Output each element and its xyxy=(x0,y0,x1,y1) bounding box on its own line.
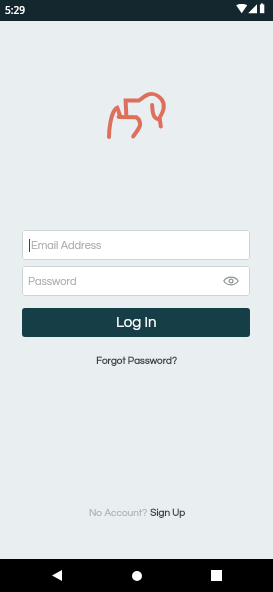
button[interactable]: Recent apps xyxy=(199,559,233,592)
button[interactable]: Forgot Password? xyxy=(90,354,183,368)
button[interactable]: Password xyxy=(22,266,250,296)
button[interactable]: Back xyxy=(40,559,74,592)
staticText: Sign Up xyxy=(150,508,185,518)
button[interactable]: Sign Up xyxy=(150,508,185,518)
staticText: Password xyxy=(28,276,77,287)
staticText: Email Address xyxy=(31,240,102,251)
button[interactable]: Email Address xyxy=(22,230,250,260)
button[interactable]: Home xyxy=(120,559,154,592)
staticText: Forgot Password? xyxy=(96,356,177,366)
button[interactable]: Log In xyxy=(22,308,250,337)
staticText: 5:29 xyxy=(5,3,25,17)
staticText: Log In xyxy=(116,315,157,330)
staticText: No Account? xyxy=(89,508,150,518)
button[interactable]: Show password xyxy=(219,269,243,293)
